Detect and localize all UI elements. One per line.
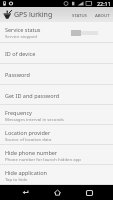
button[interactable]: Back: [9, 185, 41, 200]
button[interactable]: Recent apps: [73, 185, 105, 200]
staticText: GPS lurking: [14, 10, 53, 20]
button[interactable]: Hide application: [0, 165, 113, 185]
staticText: ID of device: [5, 50, 36, 57]
button[interactable]: Location provider: [0, 125, 113, 145]
staticText: Frequency: [5, 109, 32, 116]
button[interactable]: Hide phone number: [0, 145, 113, 165]
button[interactable]: Service status: [0, 22, 113, 43]
button[interactable]: Home: [41, 185, 73, 200]
staticText: 22:11: [97, 0, 111, 7]
staticText: Hide application: [5, 169, 47, 176]
staticText: ABOUT: [95, 12, 110, 18]
staticText: Hide phone number: [5, 149, 58, 156]
button[interactable]: Frequency: [0, 105, 113, 125]
staticText: Get ID and password: [5, 92, 60, 99]
staticText: Tap to hide: [5, 176, 28, 182]
button[interactable]: ID of device: [0, 43, 113, 64]
staticText: Password: [5, 71, 30, 78]
button[interactable]: Get ID and password: [0, 85, 113, 105]
button[interactable]: ABOUT: [94, 9, 111, 21]
staticText: Messages interval in seconds: [5, 116, 64, 122]
button[interactable]: Toggle service: [71, 27, 98, 38]
staticText: Source of location data: [5, 136, 52, 142]
button[interactable]: STATUS: [71, 9, 88, 21]
button[interactable]: Password: [0, 64, 113, 85]
staticText: Service stopped: [5, 33, 38, 39]
staticText: Service status: [5, 26, 41, 33]
staticText: Location provider: [5, 129, 51, 136]
staticText: Phone number for launch hidden app: [5, 156, 81, 162]
staticText: STATUS: [72, 12, 87, 18]
